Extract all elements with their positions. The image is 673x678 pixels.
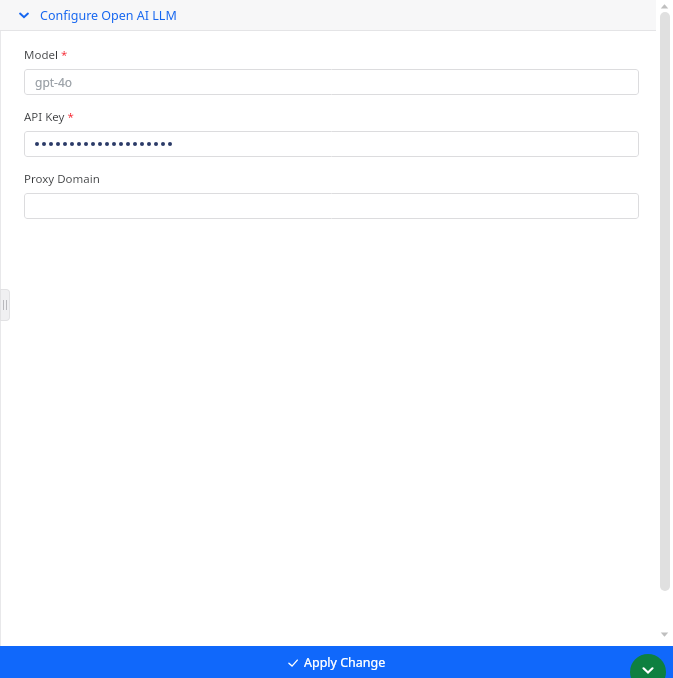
staticText: Proxy Domain	[24, 171, 100, 187]
button[interactable]: Collapse section	[0, 0, 656, 30]
button[interactable]: Scroll down	[656, 628, 673, 640]
staticText: Configure Open AI LLM	[40, 7, 177, 24]
staticText: Model *	[24, 47, 68, 63]
button[interactable]: Expand assistant	[630, 654, 666, 678]
other: Collapse section	[17, 8, 31, 22]
staticText: Apply Change	[304, 654, 386, 671]
staticText: gpt-4o	[35, 74, 73, 90]
button[interactable]	[35, 131, 628, 157]
button[interactable]: Resize panel	[0, 289, 10, 321]
button[interactable]	[35, 193, 628, 219]
button[interactable]: Scroll up	[656, 0, 673, 12]
button[interactable]: gpt-4o	[35, 69, 628, 95]
staticText: API Key *	[24, 109, 74, 125]
button[interactable]: Apply Change	[0, 646, 673, 678]
